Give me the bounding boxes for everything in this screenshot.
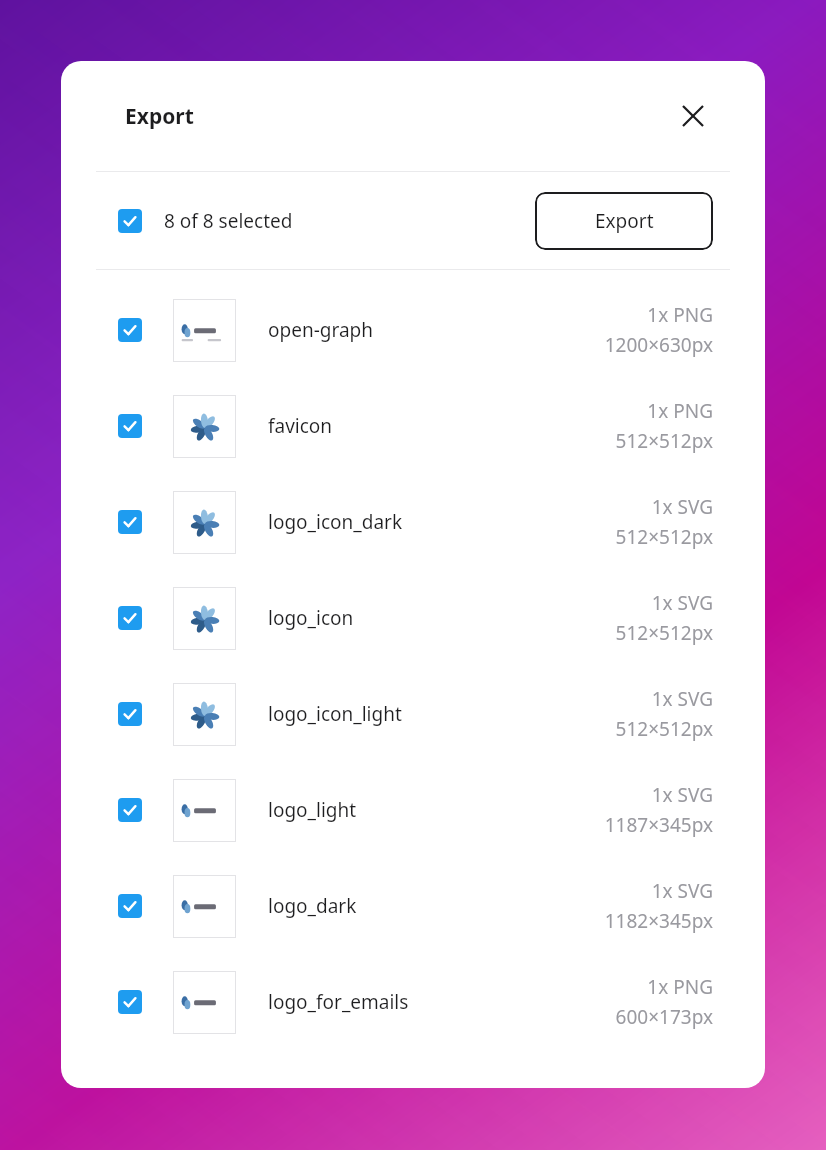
button[interactable]: Close [673,96,713,136]
button[interactable]: favicon [61,378,765,474]
staticText: 1x SVG [651,878,713,904]
staticText: logo_icon_dark [268,509,403,535]
staticText: 1x PNG [647,398,713,424]
staticText: 1x SVG [651,494,713,520]
button[interactable]: open-graph [61,282,765,378]
button[interactable]: logo_light [61,762,765,858]
staticText: 512×512px [615,716,713,742]
staticText: 512×512px [615,524,713,550]
staticText: 600×173px [615,1004,713,1030]
staticText: 1x PNG [647,974,713,1000]
staticText: logo_for_emails [268,989,409,1015]
staticText: 1187×345px [604,812,713,838]
staticText: logo_dark [268,893,357,919]
staticText: 1x SVG [651,686,713,712]
staticText: favicon [268,413,333,439]
button[interactable]: Export [535,192,713,250]
staticText: 512×512px [615,620,713,646]
staticText: 1182×345px [604,908,713,934]
staticText: 8 of 8 selected [164,208,293,234]
staticText: 1x SVG [651,590,713,616]
staticText: open-graph [268,317,373,343]
staticText: Export [125,102,194,131]
button[interactable]: 8 of 8 selected [118,208,293,234]
staticText: Export [595,208,654,234]
staticText: logo_icon [268,605,354,631]
staticText: 512×512px [615,428,713,454]
button[interactable]: logo_icon_dark [61,474,765,570]
button[interactable]: logo_dark [61,858,765,954]
button[interactable]: logo_icon_light [61,666,765,762]
staticText: logo_light [268,797,357,823]
button[interactable]: logo_icon [61,570,765,666]
button[interactable]: logo_for_emails [61,954,765,1050]
staticText: logo_icon_light [268,701,402,727]
staticText: 1x SVG [651,782,713,808]
staticText: 1x PNG [647,302,713,328]
staticText: 1200×630px [604,332,713,358]
